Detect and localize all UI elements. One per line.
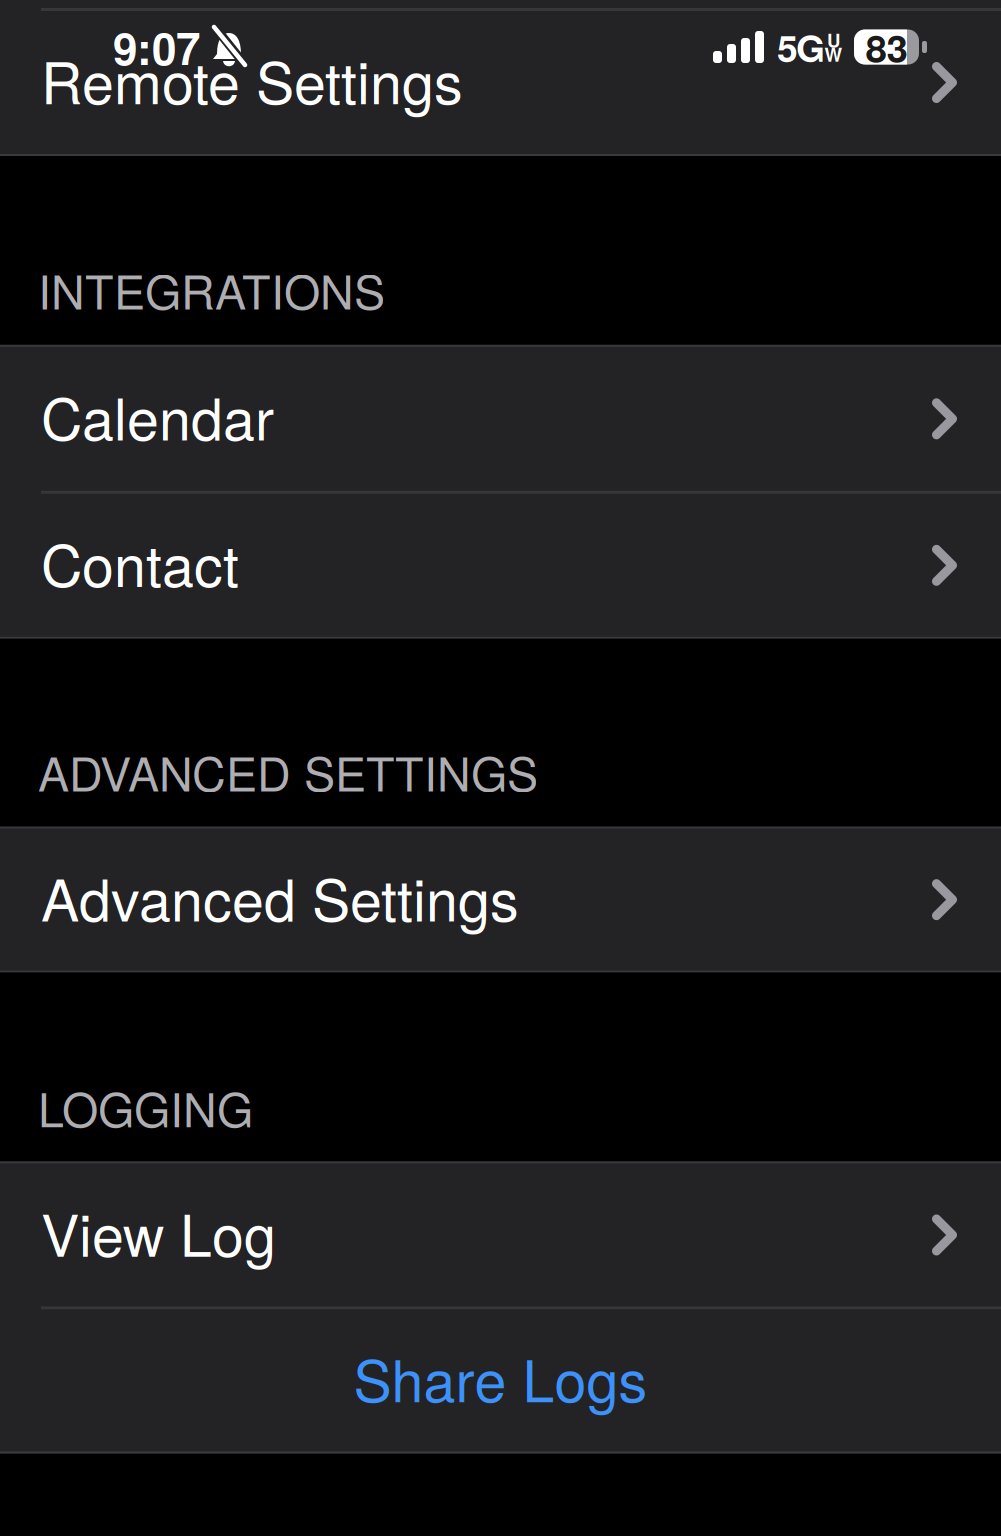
staticText: Share Logs (353, 1336, 647, 1418)
staticText: Remote Settings (41, 38, 463, 120)
staticText: Advanced Settings (41, 856, 519, 938)
staticText: 5G (777, 20, 825, 74)
staticText: 9:07 (113, 15, 200, 78)
staticText: U (827, 27, 840, 53)
button[interactable]: View Log (0, 1163, 1001, 1306)
button[interactable]: Share Logs (0, 1309, 1001, 1451)
staticText: ADVANCED SETTINGS (38, 738, 538, 805)
button[interactable]: Contact (0, 494, 1001, 637)
staticText: View Log (41, 1191, 276, 1273)
button[interactable]: Remote Settings (0, 11, 1001, 154)
staticText: LOGGING (38, 1074, 253, 1140)
button[interactable]: Advanced Settings (0, 829, 1001, 971)
staticText: Contact (41, 521, 239, 603)
staticText: INTEGRATIONS (38, 256, 385, 323)
button[interactable]: Calendar (0, 347, 1001, 491)
staticText: Calendar (41, 375, 274, 457)
staticText: 83 (865, 19, 907, 75)
staticText: W (824, 41, 842, 67)
